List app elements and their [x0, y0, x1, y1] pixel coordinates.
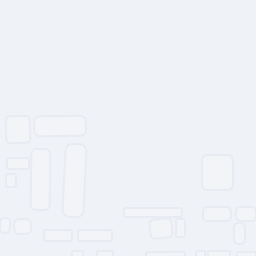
button[interactable]: Small tile [176, 219, 185, 237]
button[interactable]: Tile [97, 251, 113, 256]
button[interactable]: Chip [150, 219, 172, 238]
button[interactable]: Capsule [234, 223, 245, 244]
button[interactable]: Pill [203, 207, 231, 221]
button[interactable]: Bar [7, 158, 29, 169]
button[interactable]: Tile [6, 116, 30, 143]
button[interactable]: Pill [236, 207, 256, 221]
button[interactable]: Bar [124, 208, 182, 217]
button[interactable]: Chip [14, 219, 31, 234]
button[interactable]: Tile [146, 252, 185, 256]
button[interactable]: Column [31, 149, 50, 210]
button[interactable]: Tile [72, 251, 83, 256]
button[interactable]: Chip [0, 218, 10, 233]
button[interactable]: Column [64, 144, 85, 217]
button[interactable]: Tile [237, 252, 256, 256]
button[interactable]: Bar [78, 230, 112, 241]
button[interactable]: Bar [44, 230, 72, 241]
button[interactable]: Pill [34, 116, 86, 136]
button[interactable]: Tile [196, 251, 205, 256]
button[interactable]: Small tile [6, 174, 16, 187]
button[interactable]: Card [202, 155, 233, 190]
button[interactable]: Tile [208, 251, 230, 256]
